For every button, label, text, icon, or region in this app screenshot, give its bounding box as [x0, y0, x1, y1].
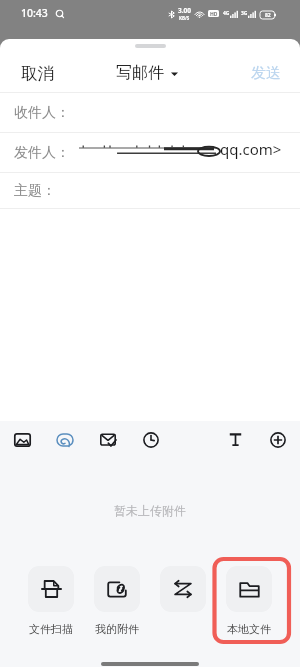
staticText: 收件人：: [14, 104, 70, 122]
button[interactable]: 收件人：: [0, 93, 300, 132]
button[interactable]: Insert image: [1, 421, 43, 458]
staticText: 我的附件: [95, 622, 139, 636]
staticText: 取消: [21, 63, 54, 84]
staticText: 写邮件: [116, 63, 164, 83]
button[interactable]: Read receipt: [86, 421, 129, 458]
button[interactable]: 本地文件: [226, 566, 272, 636]
button[interactable]: 取消: [0, 53, 68, 94]
staticText: KB/S: [179, 15, 190, 21]
button[interactable]: 文件扫描: [28, 566, 74, 636]
button[interactable]: Insert link: [43, 421, 86, 458]
staticText: 文件扫描: [29, 622, 73, 636]
button[interactable]: Text format: [214, 421, 257, 458]
staticText: HD: [210, 11, 218, 17]
button[interactable]: File transfer: [160, 566, 206, 637]
button[interactable]: 发件人：: [0, 133, 300, 172]
staticText: 4G: [223, 10, 230, 17]
staticText: qq.com>: [220, 139, 282, 159]
staticText: 本地文件: [227, 622, 271, 636]
button[interactable]: 主题：: [0, 173, 300, 208]
button[interactable]: Schedule send: [129, 421, 173, 458]
staticText: 发件人：: [14, 144, 70, 162]
button[interactable]: 我的附件: [94, 566, 140, 636]
staticText: 3G: [241, 10, 248, 17]
staticText: 10:43: [21, 6, 48, 20]
staticText: 主题：: [14, 182, 56, 200]
button[interactable]: 写邮件: [108, 56, 186, 90]
staticText: 82: [265, 12, 271, 19]
staticText: 暂未上传附件: [114, 503, 186, 518]
button[interactable]: More options: [257, 421, 299, 458]
staticText: 发送: [251, 64, 281, 83]
button[interactable]: 发送: [237, 54, 300, 93]
staticText: 3.00: [178, 6, 191, 15]
